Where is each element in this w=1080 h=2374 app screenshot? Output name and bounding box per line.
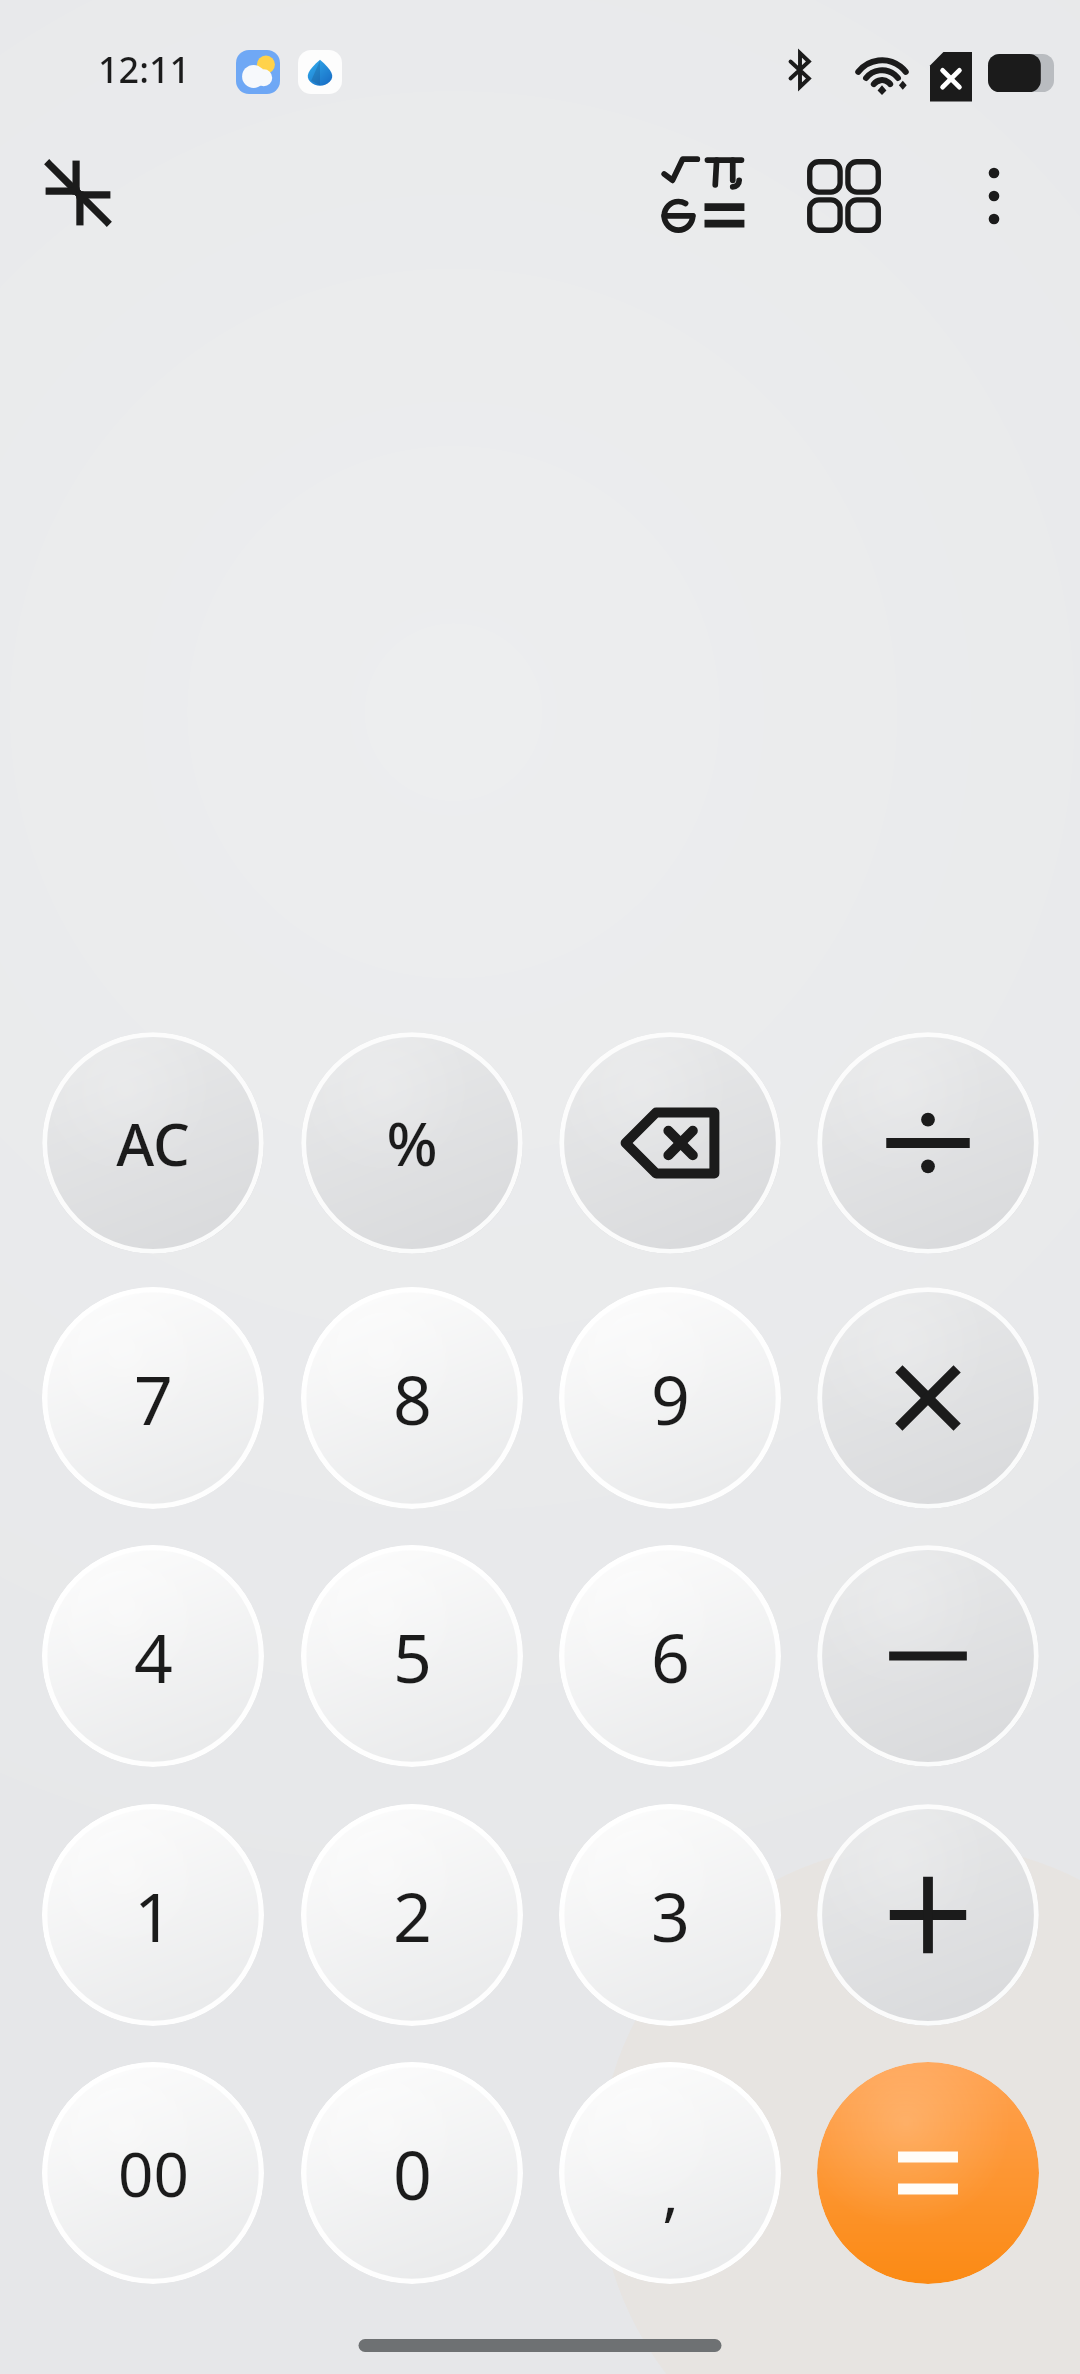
staticText: 3 — [651, 1869, 690, 1962]
staticText: % — [386, 1102, 438, 1184]
button[interactable]: 00 — [42, 2062, 264, 2284]
staticText: 6 — [651, 1610, 690, 1703]
button[interactable]: % — [301, 1032, 523, 1254]
button[interactable]: 9 — [559, 1287, 781, 1509]
button[interactable]: Minus — [817, 1545, 1039, 1767]
button[interactable]: 5 — [301, 1545, 523, 1767]
button[interactable]: 6 — [559, 1545, 781, 1767]
button[interactable]: AC — [42, 1032, 264, 1254]
staticText: 4 — [134, 1610, 173, 1703]
button[interactable]: 1 — [42, 1804, 264, 2026]
button[interactable]: Equals — [817, 2062, 1039, 2284]
staticText: 12:11 — [98, 45, 191, 94]
staticText: 2 — [393, 1869, 432, 1962]
staticText: 7 — [134, 1352, 173, 1445]
button[interactable]: 7 — [42, 1287, 264, 1509]
button[interactable]: Multiply — [817, 1287, 1039, 1509]
staticText: 0 — [393, 2127, 432, 2220]
button[interactable]: More options — [948, 150, 1040, 242]
staticText: AC — [116, 1104, 190, 1183]
staticText: 1 — [134, 1869, 173, 1962]
button[interactable]: , — [559, 2062, 781, 2284]
button[interactable]: Plus — [817, 1804, 1039, 2026]
button[interactable]: Keypad layout — [798, 150, 890, 242]
staticText: 8 — [393, 1352, 432, 1445]
button[interactable]: Divide — [817, 1032, 1039, 1254]
button[interactable]: 4 — [42, 1545, 264, 1767]
staticText: 5 — [393, 1610, 432, 1703]
staticText: , — [662, 2149, 679, 2233]
button[interactable]: 3 — [559, 1804, 781, 2026]
button[interactable]: Scientific mode — [655, 150, 747, 242]
button[interactable]: 8 — [301, 1287, 523, 1509]
button[interactable]: 0 — [301, 2062, 523, 2284]
staticText: 00 — [118, 2131, 189, 2215]
button[interactable]: Collapse — [30, 145, 126, 241]
staticText: 9 — [651, 1352, 690, 1445]
button[interactable]: 2 — [301, 1804, 523, 2026]
button[interactable]: Backspace — [559, 1032, 781, 1254]
